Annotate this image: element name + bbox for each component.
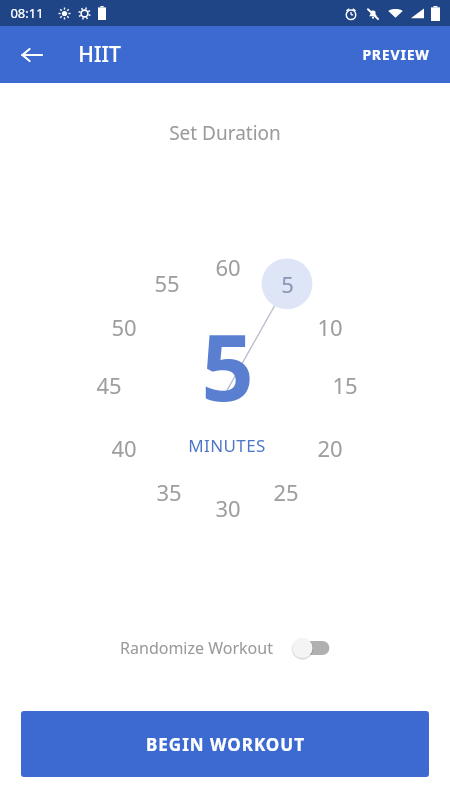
staticText: 55	[154, 268, 180, 298]
button[interactable]: BEGIN WORKOUT	[21, 711, 429, 777]
staticText: PREVIEW	[362, 45, 430, 64]
button[interactable]: 25	[259, 474, 313, 510]
staticText: BEGIN WORKOUT	[146, 733, 305, 756]
button[interactable]: 35	[142, 474, 196, 510]
staticText: 5	[201, 303, 254, 413]
button[interactable]: 55	[140, 265, 194, 301]
button[interactable]: Back	[8, 31, 56, 79]
button[interactable]: Randomize Workout	[114, 632, 337, 664]
staticText: 20	[317, 433, 343, 463]
staticText: 60	[215, 252, 241, 282]
staticText: 50	[111, 312, 137, 342]
button[interactable]: 60	[201, 249, 255, 285]
staticText: 30	[215, 493, 241, 523]
button[interactable]: 50	[97, 309, 151, 345]
button[interactable]: 10	[303, 309, 357, 345]
staticText: 5	[281, 269, 294, 299]
staticText: 08:11	[10, 4, 44, 22]
button[interactable]: 40	[97, 430, 151, 466]
staticText: 40	[111, 433, 137, 463]
staticText: 25	[273, 477, 299, 507]
staticText: 10	[317, 312, 343, 342]
button[interactable]: 30	[201, 490, 255, 526]
staticText: Set Duration	[169, 120, 281, 146]
staticText: Randomize Workout	[120, 637, 273, 659]
staticText: 35	[156, 477, 182, 507]
staticText: 45	[96, 370, 122, 400]
button[interactable]: 15	[318, 367, 372, 403]
staticText: HIIT	[78, 40, 121, 69]
button[interactable]: 5	[260, 266, 314, 302]
staticText: 15	[332, 370, 358, 400]
button[interactable]: PREVIEW	[348, 35, 444, 74]
staticText: MINUTES	[188, 434, 266, 457]
button[interactable]: 45	[82, 367, 136, 403]
button[interactable]: 20	[303, 430, 357, 466]
